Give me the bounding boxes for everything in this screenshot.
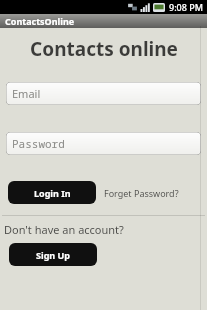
staticText: Sign Up [36,249,71,261]
button[interactable]: Sign Up [9,243,97,266]
staticText: Password [12,136,65,151]
button[interactable]: Forget Password? [104,187,179,199]
staticText: Contacts online [30,36,178,62]
button[interactable]: Email [6,82,201,105]
staticText: ContactsOnline [5,15,75,27]
staticText: Login In [34,187,71,199]
staticText: 9:08 PM [169,1,203,13]
staticText: Email [12,86,41,101]
staticText: Don't have an account? [4,222,124,237]
button[interactable]: Login In [8,181,96,204]
button[interactable]: Password [6,132,201,155]
